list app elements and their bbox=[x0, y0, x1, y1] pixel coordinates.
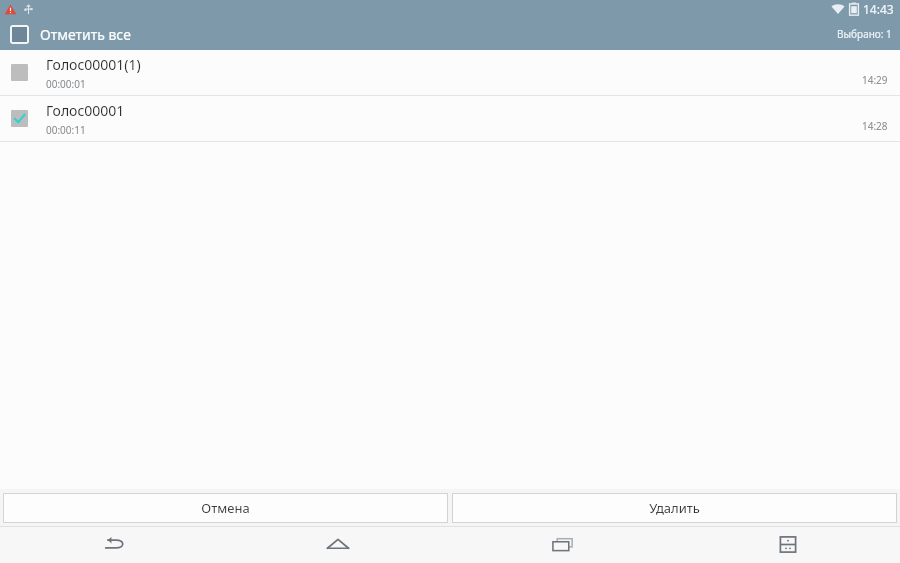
button[interactable]: Голос00001(1) bbox=[0, 50, 900, 95]
staticText: Голос00001(1) bbox=[46, 55, 141, 74]
button[interactable]: Recents bbox=[450, 526, 675, 563]
button[interactable]: Back bbox=[0, 526, 225, 563]
staticText: 00:00:01 bbox=[46, 77, 86, 91]
button[interactable]: Home bbox=[225, 526, 450, 563]
staticText: Отмена bbox=[201, 499, 250, 517]
staticText: Голос00001 bbox=[46, 101, 125, 120]
button[interactable]: Голос00001 bbox=[0, 96, 900, 141]
staticText: Выбрано: 1 bbox=[837, 27, 892, 41]
staticText: 14:29 bbox=[862, 73, 888, 87]
button[interactable]: Split screen bbox=[675, 526, 900, 563]
staticText: 14:43 bbox=[863, 1, 894, 17]
button[interactable]: Отмена bbox=[3, 493, 448, 523]
staticText: Удалить bbox=[649, 499, 700, 517]
staticText: 00:00:11 bbox=[46, 123, 86, 137]
button[interactable]: Отметить все bbox=[0, 21, 145, 48]
staticText: Отметить все bbox=[40, 25, 131, 44]
staticText: 14:28 bbox=[862, 119, 888, 133]
button[interactable]: Удалить bbox=[452, 493, 897, 523]
